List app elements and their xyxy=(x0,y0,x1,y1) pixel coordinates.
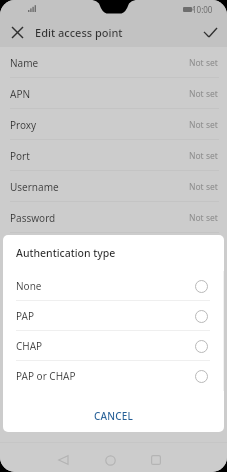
button[interactable]: Port xyxy=(0,140,227,171)
button[interactable]: PAP or CHAP xyxy=(3,361,224,391)
button[interactable]: PAP xyxy=(3,301,224,331)
button[interactable]: Recents xyxy=(134,442,178,472)
staticText: CHAP xyxy=(16,339,43,353)
staticText: 10:00 xyxy=(192,4,213,15)
button[interactable]: Name xyxy=(0,47,227,78)
staticText: Authentication type xyxy=(16,246,116,260)
staticText: APN xyxy=(10,87,31,101)
button[interactable]: Save xyxy=(193,18,227,47)
staticText: Port xyxy=(10,149,30,163)
staticText: Proxy xyxy=(10,118,37,132)
staticText: Not set xyxy=(189,150,218,162)
staticText: None xyxy=(16,279,42,293)
button[interactable]: CHAP xyxy=(3,331,224,361)
staticText: Not set xyxy=(189,57,218,69)
staticText: PAP xyxy=(16,309,34,323)
staticText: Username xyxy=(10,180,59,194)
staticText: Not set xyxy=(189,212,218,224)
button[interactable]: Back xyxy=(41,442,85,472)
button[interactable]: APN xyxy=(0,78,227,109)
button[interactable]: Close xyxy=(0,18,34,47)
button[interactable]: Password xyxy=(0,202,227,233)
staticText: Name xyxy=(10,56,39,70)
button[interactable]: Proxy xyxy=(0,109,227,140)
staticText: Not set xyxy=(189,88,218,100)
button[interactable]: None xyxy=(3,271,224,301)
staticText: Not set xyxy=(189,181,218,193)
staticText: Password xyxy=(10,211,56,225)
staticText: CANCEL xyxy=(94,409,134,423)
staticText: Edit access point xyxy=(35,25,123,40)
button[interactable]: Username xyxy=(0,171,227,202)
staticText: PAP or CHAP xyxy=(16,369,76,383)
button[interactable]: Home xyxy=(88,442,132,472)
button[interactable]: CANCEL xyxy=(3,399,224,432)
staticText: Not set xyxy=(189,119,218,131)
